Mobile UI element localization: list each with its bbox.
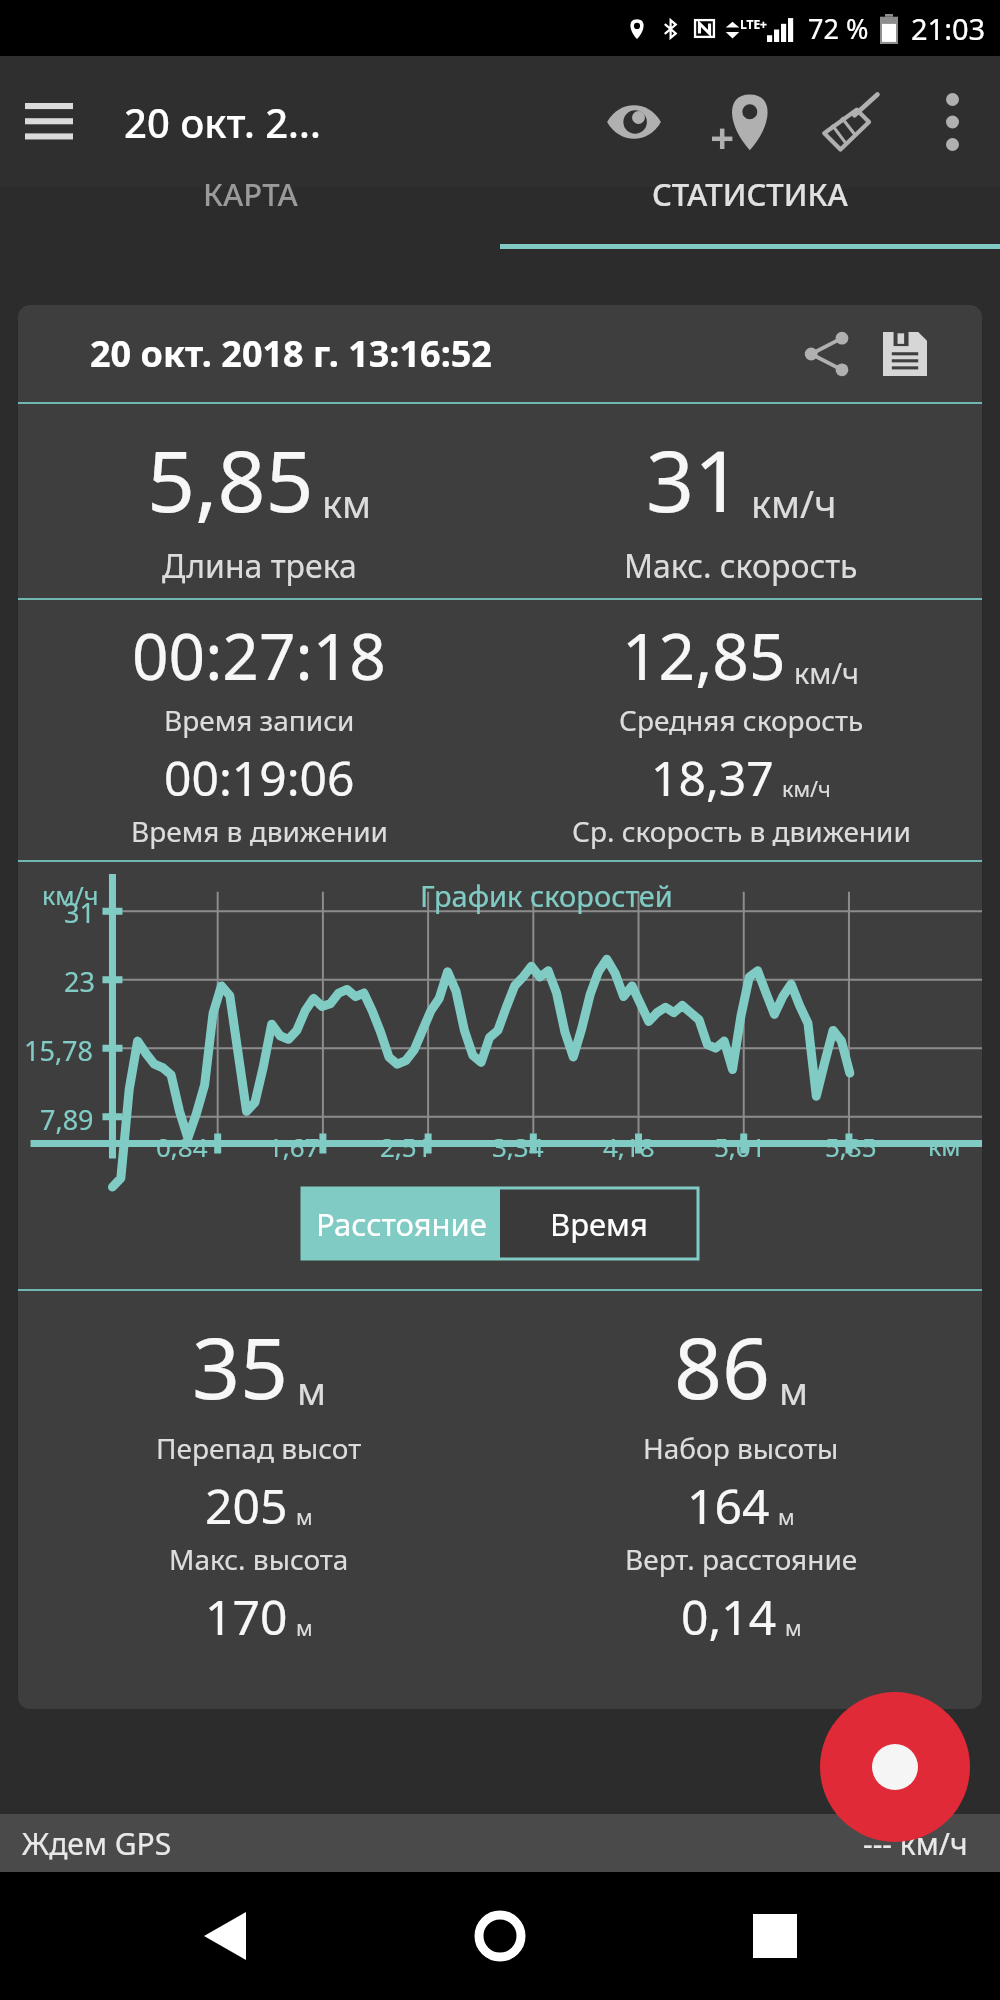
- button[interactable]: Расстояние: [302, 1188, 500, 1259]
- staticText: 170: [205, 1584, 288, 1649]
- button[interactable]: КАРТА: [0, 187, 500, 274]
- staticText: 20 окт. 2...: [124, 95, 321, 149]
- staticText: --- км/ч: [863, 1823, 968, 1864]
- staticText: 3,34: [492, 1129, 544, 1164]
- staticText: Ждем GPS: [22, 1823, 172, 1864]
- staticText: Макс. скорость: [624, 544, 858, 588]
- staticText: Время в движении: [131, 812, 388, 850]
- staticText: Ср. скорость в движении: [572, 812, 911, 850]
- staticText: 15,78: [24, 1032, 94, 1069]
- staticText: 5,85: [825, 1129, 877, 1164]
- staticText: м: [779, 1365, 809, 1416]
- button[interactable]: Add waypoint: [688, 68, 796, 176]
- button[interactable]: Open navigation menu: [0, 73, 98, 171]
- staticText: км/ч: [794, 653, 860, 692]
- staticText: Время записи: [164, 701, 355, 739]
- staticText: м: [297, 1365, 327, 1416]
- staticText: 35: [192, 1309, 289, 1423]
- staticText: км/ч: [782, 774, 831, 803]
- button[interactable]: Toggle visibility: [580, 68, 688, 176]
- button[interactable]: Start recording: [820, 1692, 970, 1842]
- staticText: 5,01: [714, 1129, 766, 1164]
- staticText: 12,85: [622, 612, 786, 699]
- button[interactable]: More options: [904, 74, 1000, 170]
- staticText: м: [296, 1502, 313, 1531]
- button[interactable]: Clear track: [796, 68, 904, 176]
- staticText: 0,14: [681, 1584, 777, 1649]
- button[interactable]: Home: [450, 1886, 550, 1986]
- staticText: Верт. расстояние: [625, 1540, 858, 1578]
- staticText: Набор высоты: [643, 1429, 839, 1467]
- staticText: LTE+: [740, 16, 767, 32]
- staticText: км: [322, 478, 372, 529]
- staticText: 5,85: [147, 422, 314, 536]
- staticText: 1,67: [268, 1129, 320, 1164]
- staticText: км/ч: [42, 878, 99, 912]
- staticText: Макс. высота: [169, 1540, 349, 1578]
- staticText: м: [785, 1613, 802, 1642]
- staticText: 4,18: [603, 1129, 655, 1164]
- staticText: 00:27:18: [132, 612, 386, 699]
- staticText: 7,89: [40, 1101, 94, 1138]
- staticText: 205: [205, 1473, 288, 1538]
- staticText: Расстояние: [316, 1203, 487, 1245]
- staticText: 31: [64, 894, 95, 931]
- staticText: 2,51: [380, 1129, 432, 1164]
- staticText: 21:03: [911, 9, 986, 48]
- button[interactable]: СТАТИСТИКА: [500, 187, 1000, 274]
- staticText: 164: [687, 1473, 770, 1538]
- staticText: СТАТИСТИКА: [652, 173, 848, 215]
- button[interactable]: Share: [796, 323, 858, 385]
- button[interactable]: Back: [175, 1886, 275, 1986]
- button[interactable]: Время: [500, 1188, 698, 1259]
- staticText: КАРТА: [203, 173, 298, 215]
- staticText: Время: [550, 1203, 648, 1245]
- staticText: м: [296, 1613, 313, 1642]
- staticText: 18,37: [651, 745, 774, 810]
- button[interactable]: Recent apps: [725, 1886, 825, 1986]
- staticText: Перепад высот: [156, 1429, 362, 1467]
- staticText: 20 окт. 2018 г. 13:16:52: [90, 329, 492, 378]
- staticText: 00:19:06: [164, 745, 355, 810]
- staticText: 72 %: [808, 10, 869, 47]
- staticText: 0,84: [156, 1129, 208, 1164]
- staticText: 86: [674, 1309, 771, 1423]
- staticText: км/ч: [751, 478, 837, 529]
- staticText: м: [778, 1502, 795, 1531]
- staticText: км: [928, 1129, 961, 1163]
- staticText: 31: [646, 422, 743, 536]
- staticText: График скоростей: [420, 876, 673, 915]
- button[interactable]: Save: [874, 323, 936, 385]
- staticText: 23: [64, 963, 95, 1000]
- staticText: Средняя скорость: [619, 701, 864, 739]
- staticText: Длина трека: [162, 544, 357, 588]
